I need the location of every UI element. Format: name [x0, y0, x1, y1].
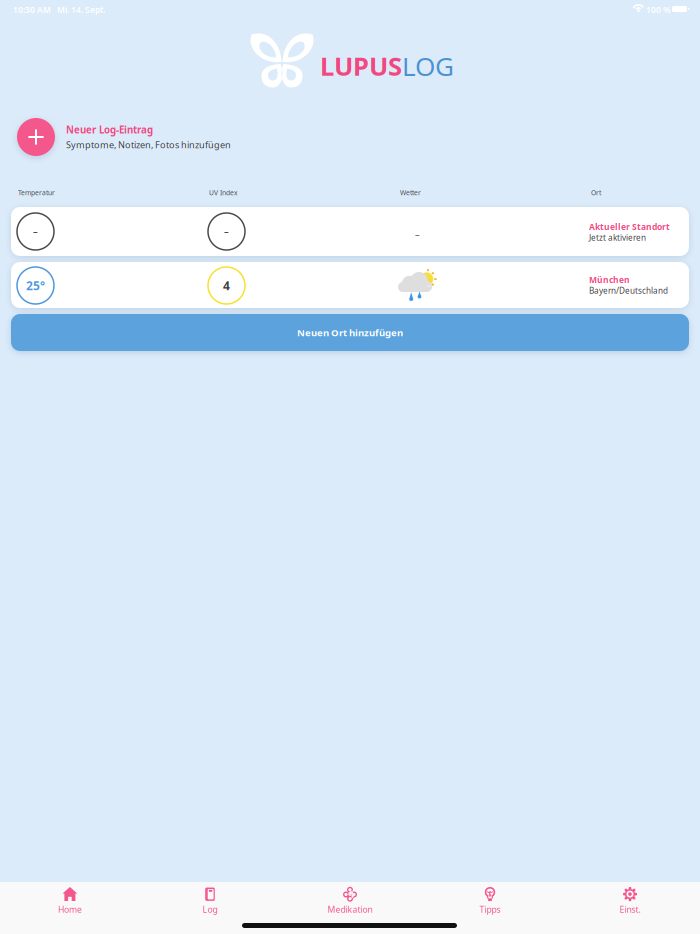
button[interactable]: Tipps — [420, 888, 560, 914]
staticText: – — [415, 228, 420, 241]
staticText: 10:30 AM Mi. 14. Sept. — [13, 4, 105, 16]
staticText: UV Index — [209, 188, 238, 197]
staticText: Home — [58, 904, 82, 915]
staticText: LUPUS — [320, 48, 402, 83]
staticText: – — [224, 225, 229, 238]
staticText: – — [33, 225, 38, 238]
staticText: München — [589, 274, 630, 285]
staticText: 100 % — [646, 4, 670, 16]
staticText: Neuen Ort hinzufügen — [297, 326, 403, 339]
staticText: Temperatur — [18, 188, 55, 197]
staticText: Ort — [591, 188, 601, 197]
staticText: 25° — [26, 277, 45, 294]
button[interactable]: Einst. — [560, 888, 700, 914]
staticText: Medikation — [327, 904, 372, 915]
staticText: Symptome, Notizen, Fotos hinzufügen — [66, 138, 231, 151]
button[interactable]: – — [11, 207, 689, 256]
staticText: Bayern/Deutschland — [589, 285, 668, 296]
button[interactable]: Home — [0, 888, 140, 914]
button[interactable]: Neuen Ort hinzufügen — [11, 314, 689, 351]
staticText: LOG — [402, 48, 454, 84]
button[interactable]: Medikation — [280, 888, 420, 914]
staticText: Jetzt aktivieren — [589, 232, 646, 243]
button[interactable]: Log — [140, 888, 280, 914]
staticText: Log — [202, 904, 217, 915]
staticText: Wetter — [400, 188, 421, 197]
staticText: Neuer Log-Eintrag — [66, 123, 153, 136]
staticText: 4 — [223, 277, 230, 294]
button[interactable]: 25° — [11, 262, 689, 308]
button[interactable]: Neuer Log-Eintrag — [17, 118, 417, 156]
staticText: Einst. — [619, 904, 640, 915]
staticText: Tipps — [479, 904, 500, 915]
staticText: Aktueller Standort — [589, 221, 670, 232]
